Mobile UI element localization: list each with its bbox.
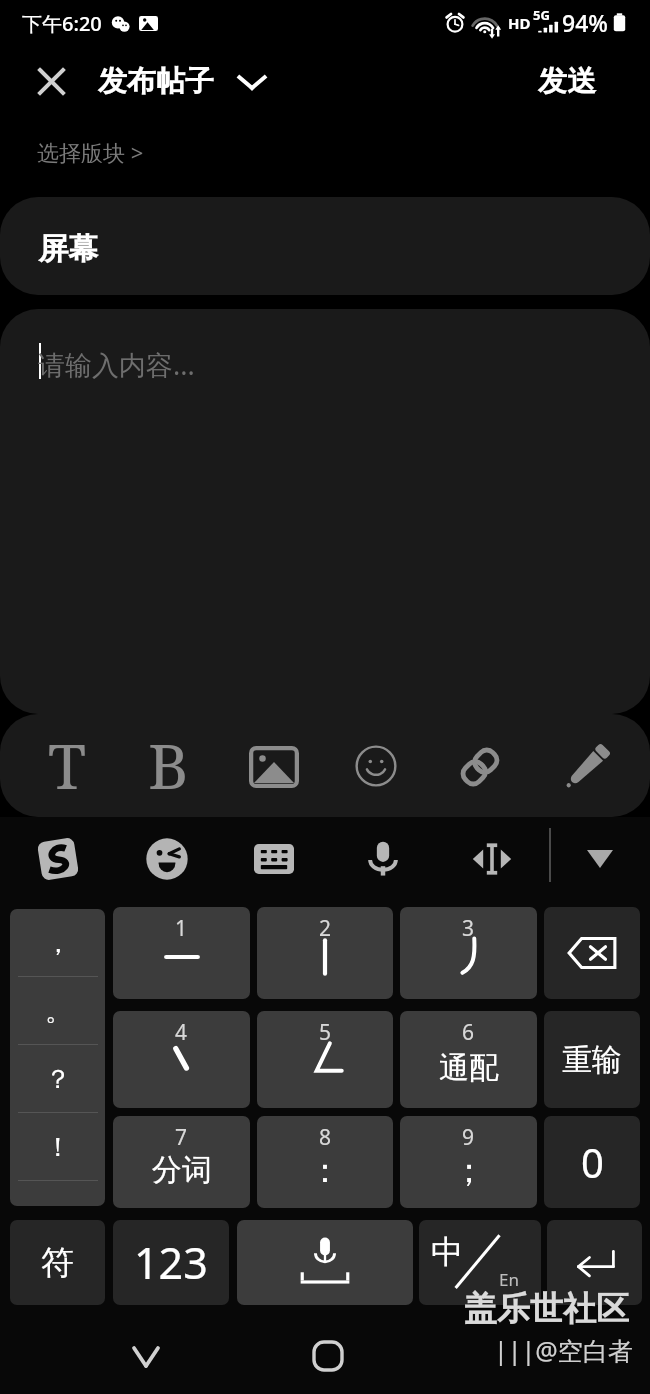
staticText: 中 <box>431 1232 463 1272</box>
staticText: ！ <box>45 1131 71 1164</box>
staticText: ： <box>308 1149 342 1192</box>
staticText: 94% <box>562 7 608 38</box>
staticText: 下午6:20 <box>22 10 102 37</box>
button[interactable]: Keyboard layout <box>248 833 300 885</box>
staticText: 通配 <box>439 1049 499 1087</box>
staticText: 选择版块 > <box>37 137 144 167</box>
staticText: 屏幕 <box>38 230 98 268</box>
staticText: ？ <box>45 1063 71 1096</box>
button[interactable]: Bold <box>134 720 202 788</box>
button[interactable]: Switch Chinese English <box>419 1220 541 1305</box>
button[interactable]: 请输入内容... <box>0 309 650 714</box>
button[interactable]: Move cursor <box>466 833 518 885</box>
staticText: 发布帖子 <box>98 63 214 100</box>
button[interactable]: Home <box>298 1326 358 1386</box>
button[interactable]: 重输 <box>544 1011 640 1108</box>
button[interactable]: Draw <box>554 720 622 788</box>
button[interactable]: 屏幕 <box>0 197 650 295</box>
button[interactable]: 123 <box>113 1220 229 1305</box>
button[interactable]: Enter <box>547 1220 642 1305</box>
staticText: 符 <box>41 1242 74 1284</box>
button[interactable]: 4 <box>113 1011 250 1108</box>
button[interactable]: 选择版块 > <box>37 134 144 170</box>
button[interactable]: Emoji <box>141 833 193 885</box>
button[interactable]: 7 <box>113 1116 250 1208</box>
button[interactable]: 。 <box>10 977 105 1045</box>
staticText: 5 <box>319 1018 332 1047</box>
button[interactable]: Backspace <box>544 907 640 999</box>
button[interactable]: Text style <box>33 720 101 788</box>
staticText: |||@空白者 <box>494 1333 633 1367</box>
button[interactable]: 发送 <box>538 63 596 100</box>
button[interactable]: Close <box>22 53 78 109</box>
button[interactable]: 1 <box>113 907 250 999</box>
staticText: 发送 <box>538 63 596 100</box>
staticText: 123 <box>134 1233 208 1292</box>
button[interactable]: 5 <box>257 1011 393 1108</box>
staticText: 重输 <box>562 1041 622 1079</box>
button[interactable]: Insert image <box>240 720 308 788</box>
button[interactable]: Voice input <box>357 833 409 885</box>
staticText: 6 <box>462 1018 475 1047</box>
button[interactable]: Recent apps <box>474 1320 534 1380</box>
staticText: En <box>499 1268 519 1291</box>
button[interactable]: 8 <box>257 1116 393 1208</box>
button[interactable]: 6 <box>400 1011 537 1108</box>
staticText: 请输入内容... <box>38 346 195 383</box>
button[interactable]: 3 <box>400 907 537 999</box>
button[interactable]: 2 <box>257 907 393 999</box>
staticText: 分词 <box>152 1151 212 1189</box>
staticText: 1 <box>175 914 188 943</box>
staticText: 4 <box>175 1018 188 1047</box>
button[interactable]: Space and voice input <box>237 1220 413 1305</box>
staticText: 2 <box>319 914 332 943</box>
button[interactable]: Hide keyboard <box>574 833 626 885</box>
staticText: 3 <box>462 914 475 943</box>
button[interactable]: 0 <box>544 1116 640 1208</box>
button[interactable]: Emoji <box>342 720 410 788</box>
button[interactable]: Back <box>116 1327 176 1387</box>
staticText: T <box>48 723 87 791</box>
staticText: 5G <box>533 6 550 24</box>
button[interactable]: ， <box>10 909 105 977</box>
staticText: 0 <box>581 1135 604 1189</box>
staticText: 盖乐世社区 <box>464 1288 629 1330</box>
staticText: 7 <box>175 1123 188 1152</box>
staticText: 8 <box>319 1123 332 1152</box>
staticText: ； <box>452 1149 486 1192</box>
staticText: ， <box>45 927 71 960</box>
staticText: HD <box>508 13 531 33</box>
button[interactable]: Sogou input <box>32 833 84 885</box>
staticText: B <box>148 723 189 791</box>
staticText: 。 <box>45 995 71 1028</box>
button[interactable]: 符 <box>10 1220 105 1305</box>
button[interactable]: 9 <box>400 1116 537 1208</box>
button[interactable]: 发布帖子 <box>98 63 271 100</box>
button[interactable]: Link <box>446 720 514 788</box>
button[interactable]: ？ <box>10 1045 105 1113</box>
button[interactable]: ！ <box>10 1113 105 1181</box>
staticText: 9 <box>462 1123 475 1152</box>
